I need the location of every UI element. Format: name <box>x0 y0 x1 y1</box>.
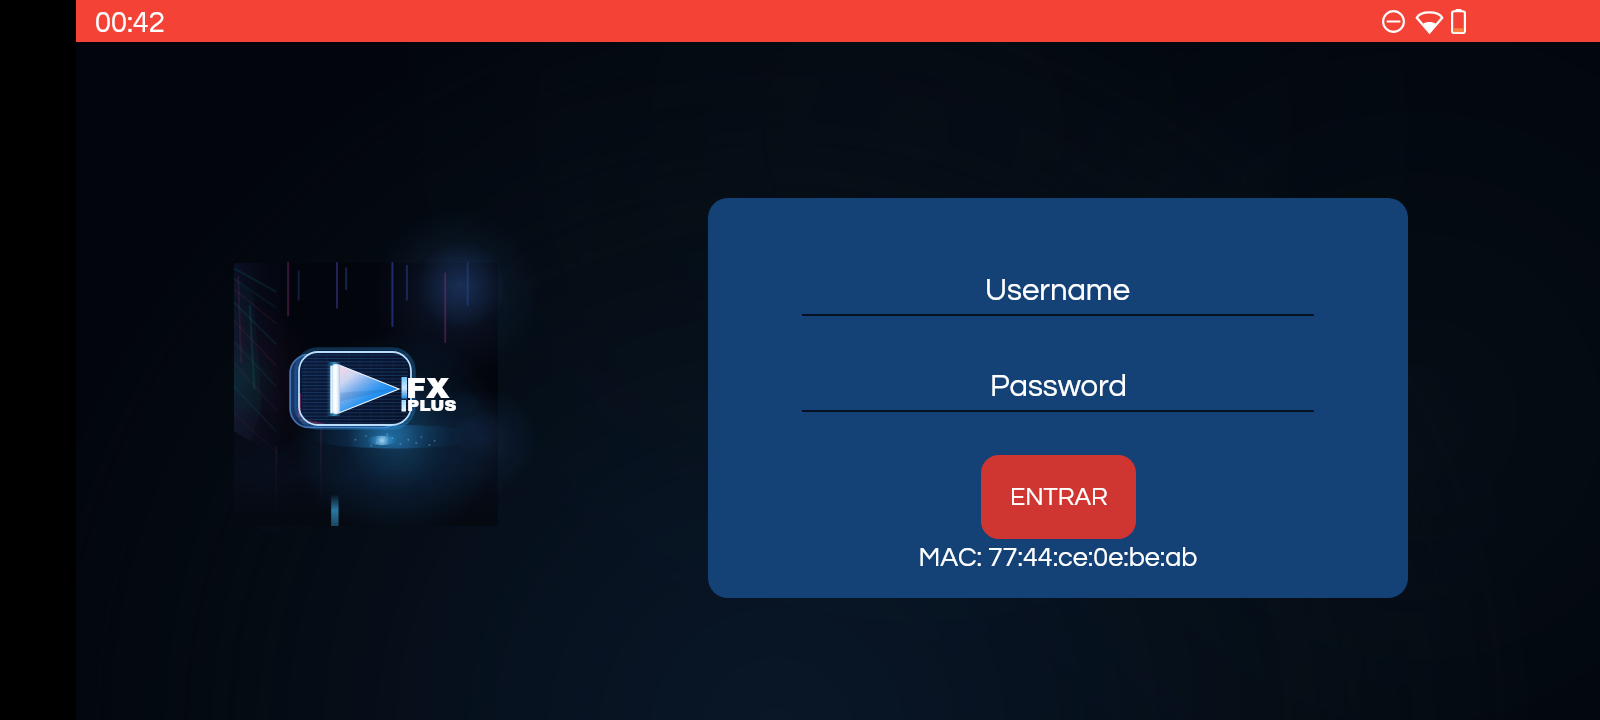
staticText: Password <box>990 371 1127 403</box>
button[interactable]: ENTRAR <box>981 455 1136 539</box>
staticText: FX <box>406 372 450 405</box>
staticText: 00:42 <box>95 8 165 38</box>
other: Do not disturb <box>1382 10 1405 33</box>
button[interactable]: Username <box>802 259 1314 316</box>
staticText: ENTRAR <box>1010 484 1108 510</box>
other: Wifi <box>1416 10 1443 33</box>
button[interactable]: Password <box>802 355 1314 412</box>
staticText: Username <box>985 275 1131 307</box>
staticText: PLUS <box>407 396 457 414</box>
staticText: MAC: 77:44:ce:0e:be:ab <box>708 544 1408 572</box>
other: Battery <box>1451 9 1466 34</box>
